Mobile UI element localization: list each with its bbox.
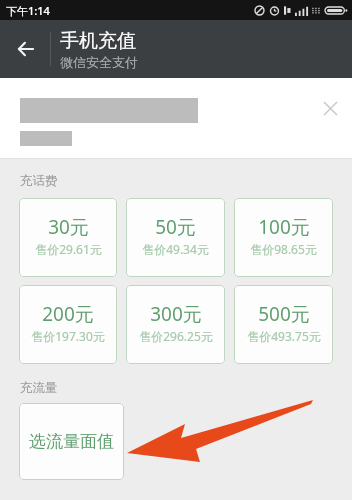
staticText: 300元 bbox=[150, 301, 202, 327]
staticText: 售价296.25元 bbox=[139, 328, 213, 344]
staticText: 50元 bbox=[155, 214, 196, 240]
staticText: 微信安全支付 bbox=[60, 54, 138, 70]
button[interactable]: 100元 bbox=[234, 198, 333, 277]
button[interactable]: 200元 bbox=[19, 285, 117, 364]
staticText: 100元 bbox=[258, 214, 310, 240]
button[interactable]: 50元 bbox=[126, 198, 225, 277]
staticText: 充话费 bbox=[20, 173, 58, 189]
staticText: 500元 bbox=[258, 301, 310, 327]
staticText: 选流量面值 bbox=[29, 431, 114, 452]
button[interactable]: Back bbox=[0, 23, 52, 75]
staticText: 售价493.75元 bbox=[247, 328, 321, 344]
staticText: 售价49.34元 bbox=[142, 241, 209, 257]
staticText: 手机充值 bbox=[60, 29, 136, 53]
staticText: 售价197.30元 bbox=[31, 328, 105, 344]
staticText: 售价98.65元 bbox=[250, 241, 317, 257]
button[interactable]: 30元 bbox=[19, 198, 117, 277]
staticText: 30元 bbox=[48, 214, 89, 240]
button[interactable]: 500元 bbox=[234, 285, 333, 364]
staticText: 售价29.61元 bbox=[35, 241, 102, 257]
staticText: 充流量 bbox=[20, 380, 58, 396]
button[interactable]: 选流量面值 bbox=[19, 403, 124, 480]
staticText: 200元 bbox=[42, 301, 94, 327]
button[interactable]: 300元 bbox=[126, 285, 225, 364]
button[interactable]: Clear bbox=[308, 86, 352, 130]
staticText: 下午1:14 bbox=[6, 3, 50, 18]
